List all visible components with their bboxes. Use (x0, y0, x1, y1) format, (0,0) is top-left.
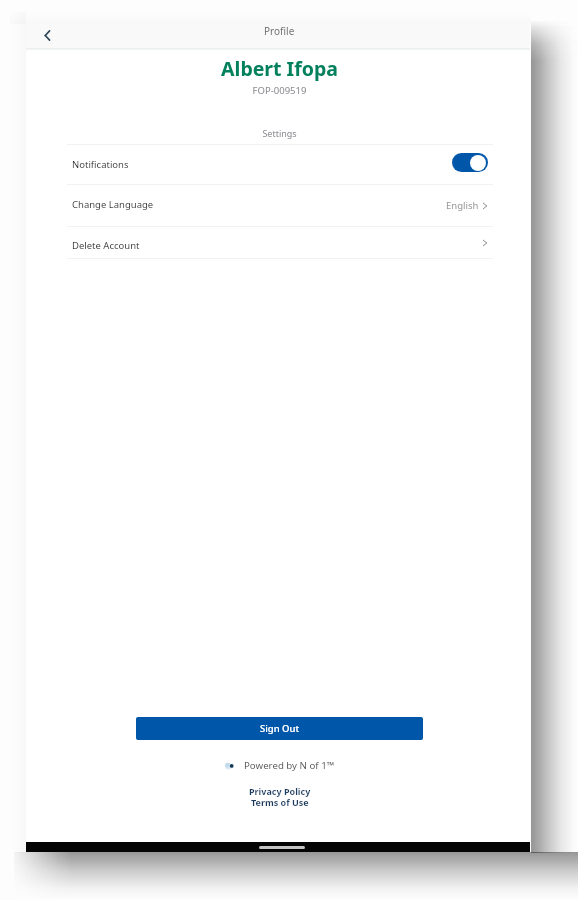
staticText: Notifications (72, 158, 129, 171)
button[interactable]: Sign Out (136, 717, 423, 740)
button[interactable]: Notifications (67, 145, 493, 184)
staticText: Albert Ifopa (29, 55, 530, 82)
staticText: Settings (29, 127, 530, 139)
button[interactable]: Delete Account (67, 227, 493, 258)
staticText: FOP-009519 (29, 84, 530, 97)
staticText: Change Language (72, 198, 154, 211)
staticText: Sign Out (260, 722, 300, 735)
button[interactable]: Notifications toggle (452, 153, 488, 172)
button[interactable]: Back (33, 23, 61, 48)
staticText: Powered by N of 1™ (244, 759, 335, 772)
staticText: Delete Account (72, 239, 140, 252)
staticText: Profile (264, 24, 295, 38)
staticText: English (446, 199, 479, 212)
button[interactable]: Terms of Use (249, 795, 311, 809)
button[interactable]: Change Language (67, 185, 493, 226)
button[interactable]: Privacy Policy (247, 784, 313, 798)
